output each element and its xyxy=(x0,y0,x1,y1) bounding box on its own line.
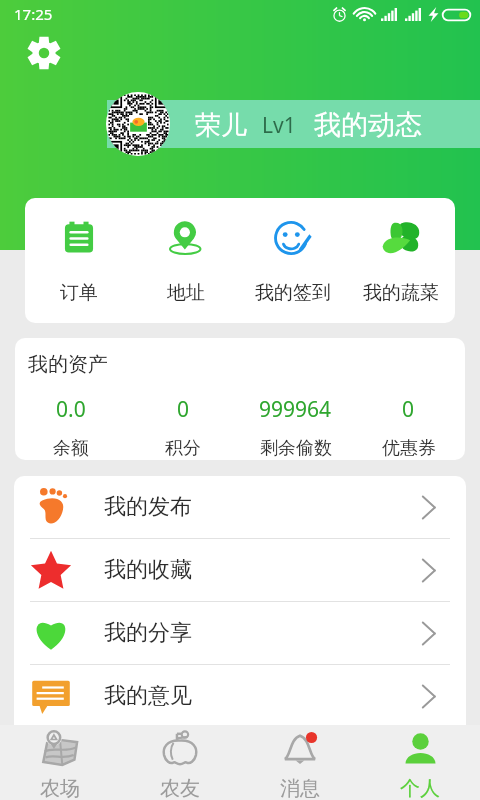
button[interactable]: 我的收藏 xyxy=(14,539,466,601)
button[interactable]: 0 xyxy=(352,395,465,460)
staticText: 17:25 xyxy=(14,4,53,24)
staticText: 优惠券 xyxy=(382,437,436,460)
staticText: 我的收藏 xyxy=(104,556,192,584)
staticText: 我的签到 xyxy=(255,281,331,305)
staticText: 积分 xyxy=(165,437,201,460)
staticText: 荣儿 xyxy=(195,109,247,142)
staticText: 个人 xyxy=(400,776,440,800)
button[interactable]: 0 xyxy=(127,395,239,460)
staticText: 我的蔬菜 xyxy=(363,281,439,305)
button[interactable]: Settings xyxy=(22,31,66,75)
button[interactable]: 订单 xyxy=(25,198,132,323)
button[interactable]: 个人 xyxy=(360,725,480,800)
staticText: 0.0 xyxy=(56,395,86,424)
staticText: 余额 xyxy=(53,437,89,460)
staticText: 农友 xyxy=(160,776,200,800)
staticText: 地址 xyxy=(167,281,205,305)
staticText: 我的发布 xyxy=(104,493,192,521)
staticText: 消息 xyxy=(280,776,320,800)
staticText: 我的资产 xyxy=(28,352,108,377)
staticText: 999964 xyxy=(259,395,332,424)
button[interactable]: 我的发布 xyxy=(14,476,466,538)
button[interactable]: 0.0 xyxy=(15,395,127,460)
staticText: 订单 xyxy=(60,281,98,305)
staticText: Lv1 xyxy=(262,111,296,140)
staticText: 剩余偷数 xyxy=(260,437,332,460)
button[interactable]: 农友 xyxy=(120,725,240,800)
button[interactable]: 消息 xyxy=(240,725,360,800)
staticText: 我的分享 xyxy=(104,619,192,647)
button[interactable] xyxy=(107,100,480,148)
button[interactable]: 我的签到 xyxy=(239,198,347,323)
button[interactable]: 地址 xyxy=(132,198,239,323)
staticText: 我的意见 xyxy=(104,682,192,710)
button[interactable]: 999964 xyxy=(239,395,352,460)
staticText: 农场 xyxy=(40,776,80,800)
button[interactable]: 我的分享 xyxy=(14,602,466,664)
staticText: 我的动态 xyxy=(314,108,422,142)
button[interactable]: 农场 xyxy=(0,725,120,800)
button[interactable]: 我的意见 xyxy=(14,665,466,727)
button[interactable]: 我的蔬菜 xyxy=(347,198,455,323)
button[interactable] xyxy=(106,92,170,156)
staticText: 0 xyxy=(177,395,190,424)
staticText: 0 xyxy=(402,395,415,424)
